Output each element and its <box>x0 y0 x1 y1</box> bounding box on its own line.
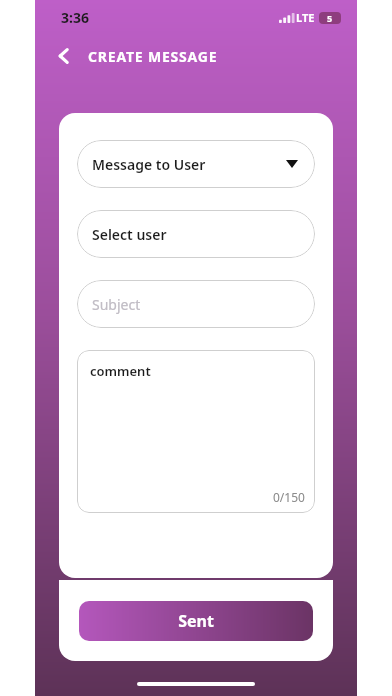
button[interactable]: comment <box>77 350 315 513</box>
staticText: comment <box>90 362 151 380</box>
button[interactable]: Select user <box>77 210 315 258</box>
button[interactable]: Message to User <box>77 140 315 188</box>
button[interactable]: Sent <box>79 601 313 641</box>
staticText: 3:36 <box>61 8 89 27</box>
staticText: Sent <box>178 610 214 632</box>
staticText: Message to User <box>92 155 206 174</box>
button[interactable]: Subject <box>77 280 315 328</box>
staticText: Subject <box>92 295 141 314</box>
button[interactable]: Back <box>47 39 81 73</box>
staticText: Select user <box>92 225 167 244</box>
staticText: CREATE MESSAGE <box>88 47 218 66</box>
staticText: 0/150 <box>273 489 305 505</box>
staticText: 5 <box>327 12 333 24</box>
staticText: LTE <box>296 10 315 25</box>
